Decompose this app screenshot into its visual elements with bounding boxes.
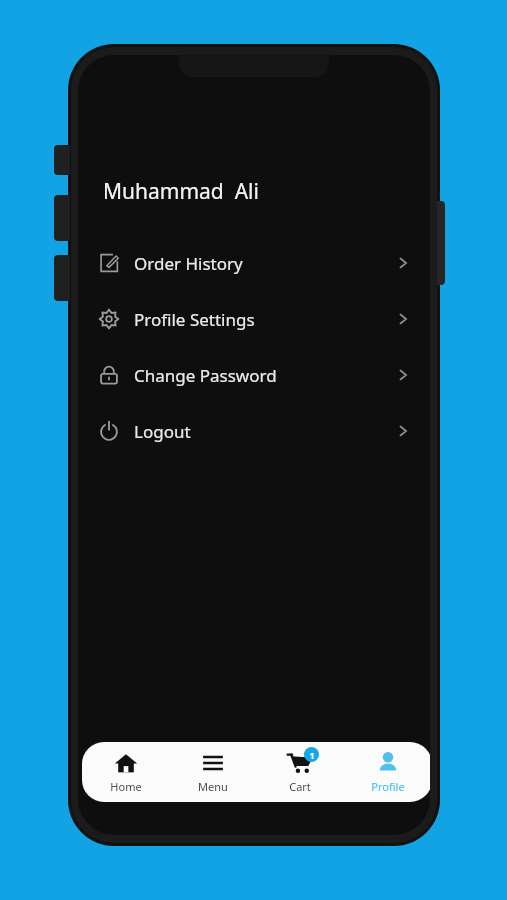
other: Profile (375, 750, 401, 776)
other: Cart (287, 750, 313, 776)
staticText: Order History (134, 252, 243, 275)
staticText: Change Password (134, 364, 277, 387)
button[interactable]: Logout (92, 409, 416, 453)
staticText: 1 (309, 749, 315, 761)
button[interactable]: Profile (344, 742, 430, 802)
staticText: Cart (289, 779, 311, 794)
staticText: Home (110, 779, 142, 794)
staticText: Profile (371, 779, 405, 794)
button[interactable]: Menu (169, 742, 256, 802)
button[interactable]: Change Password (92, 353, 416, 397)
staticText: Logout (134, 420, 191, 443)
staticText: Profile Settings (134, 308, 255, 331)
button[interactable]: Cart (256, 742, 344, 802)
staticText: Muhammad Ali (103, 177, 259, 206)
staticText: Menu (198, 779, 228, 794)
other: Menu (200, 750, 226, 776)
other: Home (113, 750, 139, 776)
button[interactable]: Home (82, 742, 169, 802)
button[interactable]: Profile Settings (92, 297, 416, 341)
button[interactable]: Order History (92, 241, 416, 285)
